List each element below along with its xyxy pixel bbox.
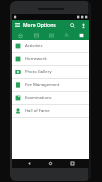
- staticText: More Options: [23, 22, 67, 29]
- button[interactable]: Tab 1: [12, 31, 28, 40]
- staticText: Examinations: [25, 95, 52, 101]
- button[interactable]: Hall of Fame: [12, 105, 89, 117]
- button[interactable]: Tab 5: [74, 31, 89, 40]
- button[interactable]: Search: [67, 20, 78, 31]
- button[interactable]: Tab 4: [59, 31, 74, 40]
- staticText: Activities: [25, 43, 43, 49]
- button[interactable]: Examinations: [12, 92, 89, 104]
- staticText: Hall of Fame: [25, 108, 50, 114]
- staticText: Fee Management: [25, 82, 60, 88]
- button[interactable]: Home: [46, 159, 55, 168]
- staticText: Photo Gallery: [25, 69, 52, 75]
- button[interactable]: Voice search: [78, 20, 89, 31]
- button[interactable]: Homework: [12, 53, 89, 65]
- button[interactable]: Back: [25, 159, 34, 168]
- button[interactable]: Tab 2: [28, 31, 44, 40]
- button[interactable]: Photo Gallery: [12, 66, 89, 78]
- button[interactable]: Tab 3: [44, 31, 59, 40]
- button[interactable]: Open navigation menu: [12, 20, 23, 31]
- button[interactable]: Activities: [12, 40, 89, 52]
- staticText: Homework: [25, 56, 47, 62]
- button[interactable]: Recent apps: [68, 159, 77, 168]
- button[interactable]: Fee Management: [12, 79, 89, 91]
